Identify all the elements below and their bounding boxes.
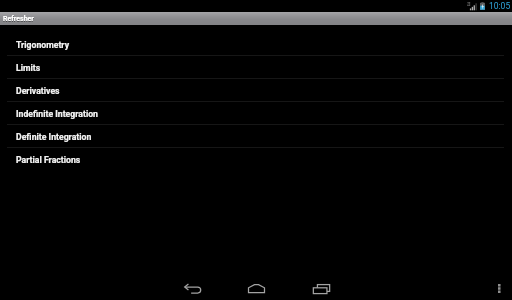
- button[interactable]: Indefinite Integration: [0, 102, 512, 125]
- button[interactable]: Limits: [0, 56, 512, 79]
- staticText: 10:05: [489, 1, 511, 11]
- staticText: Refresher: [3, 15, 34, 23]
- button[interactable]: Refresher: [0, 12, 512, 25]
- staticText: Refresher: [3, 16, 34, 24]
- staticText: Partial Fractions: [16, 155, 81, 165]
- staticText: Limits: [16, 63, 41, 73]
- button[interactable]: Partial Fractions: [0, 148, 512, 171]
- button[interactable]: Recent apps: [303, 277, 339, 300]
- staticText: Indefinite Integration: [16, 109, 98, 119]
- button[interactable]: Home: [238, 276, 274, 300]
- button[interactable]: Derivatives: [0, 79, 512, 102]
- button[interactable]: Back: [174, 276, 210, 300]
- button[interactable]: More options: [491, 277, 507, 299]
- button[interactable]: Definite Integration: [0, 125, 512, 148]
- button[interactable]: Trigonometry: [0, 33, 512, 56]
- staticText: Definite Integration: [16, 132, 92, 142]
- staticText: Trigonometry: [16, 40, 70, 50]
- staticText: Derivatives: [16, 86, 60, 96]
